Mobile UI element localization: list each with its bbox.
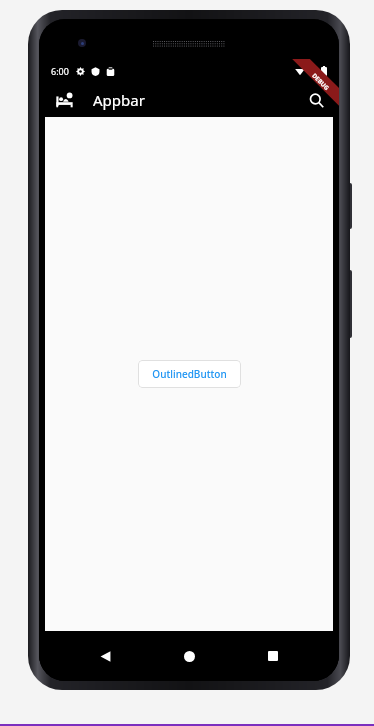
staticText: DEBUG xyxy=(310,72,331,92)
staticText: 6:00 xyxy=(51,65,69,77)
button[interactable]: Search xyxy=(303,87,329,113)
staticText: OutlinedButton xyxy=(152,367,227,381)
button[interactable]: OutlinedButton xyxy=(138,360,241,388)
button[interactable]: Notifications xyxy=(51,87,77,113)
button[interactable]: Back xyxy=(87,638,123,674)
button[interactable]: Home xyxy=(171,638,207,674)
button[interactable]: Recent apps xyxy=(255,638,291,674)
staticText: Appbar xyxy=(93,90,145,110)
